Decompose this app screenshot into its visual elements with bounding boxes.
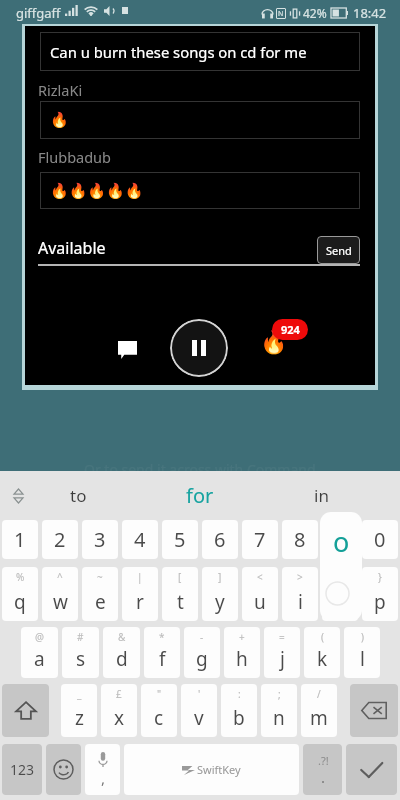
button[interactable]: { — [322, 567, 358, 621]
button[interactable]: ( — [304, 627, 340, 678]
button[interactable]: 1 — [2, 520, 38, 559]
button[interactable]: in — [265, 471, 377, 520]
staticText: + — [239, 630, 245, 644]
button[interactable]: Expand suggestions — [7, 485, 29, 507]
staticText: u — [254, 589, 266, 615]
button[interactable]: ' — [181, 684, 217, 737]
button[interactable]: Messages — [112, 335, 142, 365]
button[interactable]: Emoji — [46, 744, 81, 795]
staticText: 2 — [54, 526, 66, 553]
button[interactable]: + — [224, 627, 260, 678]
staticText: , — [101, 768, 106, 788]
staticText: z — [75, 705, 84, 731]
staticText: 🔥🔥🔥🔥🔥 — [50, 182, 144, 200]
button[interactable]: 4 — [122, 520, 158, 559]
button[interactable]: 8 — [282, 520, 318, 559]
button[interactable]: - — [184, 627, 220, 678]
staticText: y — [215, 589, 225, 615]
button[interactable]: Voice input — [85, 744, 120, 795]
staticText: 6 — [214, 526, 226, 553]
staticText: ^ — [57, 570, 63, 584]
button[interactable]: Fire reaction — [241, 319, 313, 365]
button[interactable]: | — [122, 567, 158, 621]
staticText: 4 — [134, 526, 146, 553]
button[interactable]: to — [22, 471, 135, 520]
button[interactable]: } — [362, 567, 398, 621]
button[interactable]: # — [62, 627, 99, 678]
button[interactable]: ^ — [42, 567, 78, 621]
button[interactable]: % — [2, 567, 38, 621]
staticText: n — [273, 705, 285, 731]
button[interactable]: Enter — [346, 744, 397, 795]
staticText: > — [297, 570, 303, 584]
button[interactable]: Send — [317, 236, 360, 264]
staticText: . — [321, 767, 326, 787]
staticText: i — [298, 589, 303, 615]
button[interactable]: 🔥🔥🔥🔥🔥 — [40, 172, 360, 209]
button[interactable]: 123 — [2, 744, 42, 795]
button[interactable]: Symbols — [303, 744, 342, 795]
button[interactable]: 0 — [362, 520, 398, 559]
button[interactable]: 2 — [42, 520, 78, 559]
button[interactable]: @ — [21, 627, 58, 678]
button[interactable]: : — [221, 684, 257, 737]
staticText: @ — [35, 630, 44, 644]
staticText: | — [137, 570, 143, 584]
button[interactable]: 3 — [82, 520, 118, 559]
staticText: in — [314, 484, 329, 507]
button[interactable]: ; — [261, 684, 297, 737]
staticText: / — [317, 687, 321, 701]
staticText: t — [177, 589, 184, 615]
button[interactable]: = — [264, 627, 300, 678]
button[interactable]: < — [242, 567, 278, 621]
button[interactable]: / — [301, 684, 337, 737]
staticText: w — [53, 589, 68, 615]
button[interactable]: & — [103, 627, 140, 678]
button[interactable]: Pause — [170, 319, 228, 377]
staticText: v — [194, 705, 204, 731]
staticText: m — [310, 705, 328, 731]
staticText: o — [333, 523, 350, 560]
staticText: o — [334, 589, 346, 615]
staticText: ' — [198, 687, 201, 701]
staticText: [ — [178, 570, 182, 584]
button[interactable]: ~ — [82, 567, 118, 621]
button[interactable]: ) — [344, 627, 380, 678]
button[interactable]: Can u burn these songs on cd for me — [40, 32, 360, 71]
staticText: 5 — [174, 526, 186, 553]
staticText: ( — [321, 630, 324, 644]
button[interactable]: 🔥 — [40, 101, 360, 139]
staticText: r — [136, 589, 144, 615]
button[interactable]: 5 — [162, 520, 198, 559]
staticText: " — [157, 687, 162, 701]
button[interactable]: _ — [61, 684, 97, 737]
button[interactable]: > — [282, 567, 318, 621]
staticText: } — [378, 570, 382, 584]
button[interactable]: Shift — [2, 684, 49, 737]
button[interactable]: Backspace — [350, 684, 398, 737]
staticText: ] — [218, 570, 222, 584]
staticText: f — [159, 646, 166, 672]
staticText: s — [76, 646, 86, 672]
button[interactable]: 6 — [202, 520, 238, 559]
staticText: for — [186, 482, 214, 509]
staticText: 1 — [14, 526, 26, 553]
staticText: d — [116, 646, 128, 672]
button[interactable]: " — [141, 684, 177, 737]
button[interactable]: for — [135, 471, 265, 520]
staticText: = — [279, 630, 285, 644]
staticText: j — [280, 646, 285, 672]
button[interactable]: 7 — [242, 520, 278, 559]
button[interactable]: ] — [202, 567, 238, 621]
button[interactable]: Space — [124, 744, 299, 795]
button[interactable]: * — [144, 627, 180, 678]
staticText: Or to send it across with Command — [84, 460, 316, 479]
button[interactable]: £ — [101, 684, 137, 737]
staticText: ; — [278, 687, 281, 701]
button[interactable]: o — [320, 512, 362, 621]
staticText: 7 — [254, 526, 266, 553]
staticText: g — [196, 646, 208, 672]
staticText: # — [77, 630, 84, 644]
button[interactable]: [ — [162, 567, 198, 621]
button[interactable]: 9 — [322, 520, 358, 559]
